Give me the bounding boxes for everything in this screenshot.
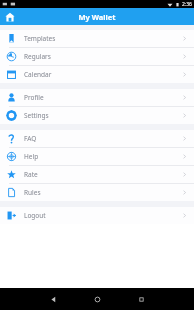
staticText: Rules — [24, 188, 41, 197]
staticText: 2:36 — [182, 1, 192, 8]
button[interactable]: Home — [75, 288, 119, 310]
button[interactable]: Logout — [0, 207, 194, 224]
staticText: Rate — [24, 170, 38, 179]
staticText: Logout — [24, 211, 46, 220]
button[interactable]: Wallet home — [3, 10, 17, 24]
staticText: Calendar — [24, 70, 52, 79]
staticText: Regulars — [24, 52, 51, 61]
staticText: Profile — [24, 93, 44, 102]
staticText: Help — [24, 152, 39, 161]
button[interactable]: Settings — [0, 107, 194, 124]
button[interactable]: Recents — [119, 288, 163, 310]
button[interactable]: Rules — [0, 184, 194, 201]
button[interactable]: Help — [0, 148, 194, 165]
button[interactable]: FAQ — [0, 130, 194, 147]
button[interactable]: Calendar — [0, 66, 194, 83]
button[interactable]: Back — [31, 288, 75, 310]
button[interactable]: Profile — [0, 89, 194, 106]
button[interactable]: Rate — [0, 166, 194, 183]
staticText: My Wallet — [78, 12, 116, 22]
button[interactable]: Templates — [0, 30, 194, 47]
staticText: FAQ — [24, 134, 37, 143]
button[interactable]: Regulars — [0, 48, 194, 65]
staticText: Settings — [24, 111, 49, 120]
staticText: Templates — [24, 34, 56, 43]
